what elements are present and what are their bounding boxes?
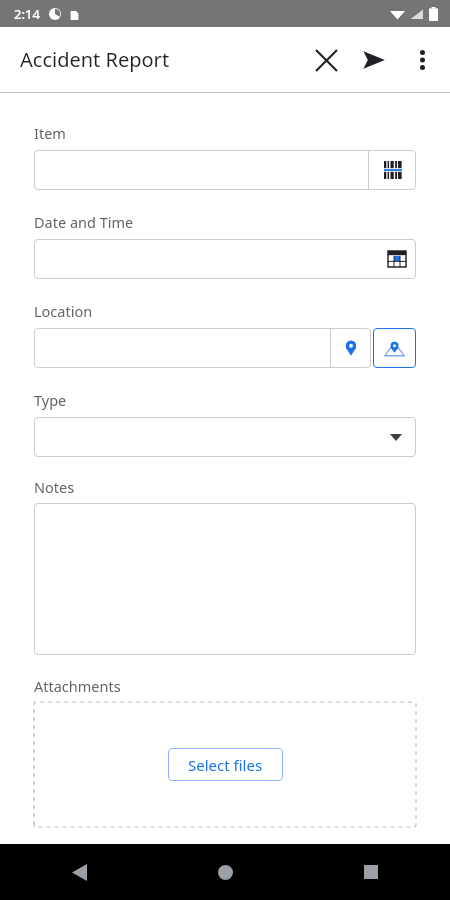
staticText: Select files — [188, 755, 263, 775]
button[interactable] — [34, 150, 368, 190]
button[interactable]: Pick location on map — [373, 328, 416, 368]
button[interactable]: Send — [350, 36, 398, 84]
staticText: Type — [34, 390, 67, 410]
button[interactable]: Use current location — [331, 328, 371, 368]
button[interactable]: Scan barcode — [369, 150, 416, 190]
staticText: Attachments — [34, 676, 121, 696]
button[interactable]: Pick date and time — [34, 239, 416, 279]
button[interactable]: Close — [302, 36, 350, 84]
staticText: Accident Report — [20, 46, 170, 73]
button[interactable]: Select files — [168, 748, 283, 781]
staticText: Date and Time — [34, 212, 134, 232]
button[interactable] — [34, 503, 416, 655]
staticText: Notes — [34, 477, 75, 497]
staticText: 2:14 — [14, 5, 40, 23]
button[interactable]: Home — [202, 849, 248, 895]
staticText: Location — [34, 301, 93, 321]
button[interactable]: Back — [56, 849, 102, 895]
button[interactable]: Recent apps — [348, 849, 394, 895]
button[interactable]: Select type — [34, 417, 416, 457]
button[interactable] — [34, 328, 330, 368]
button[interactable]: More options — [398, 36, 446, 84]
staticText: Item — [34, 123, 66, 143]
